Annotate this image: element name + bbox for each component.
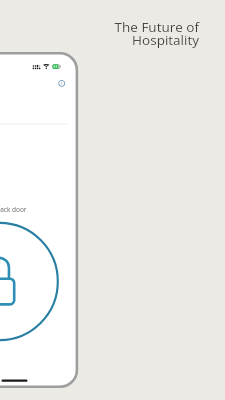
staticText: The Future of Hospitality [0,18,199,49]
staticText: Back door [0,205,27,214]
button[interactable]: Account [55,77,225,400]
